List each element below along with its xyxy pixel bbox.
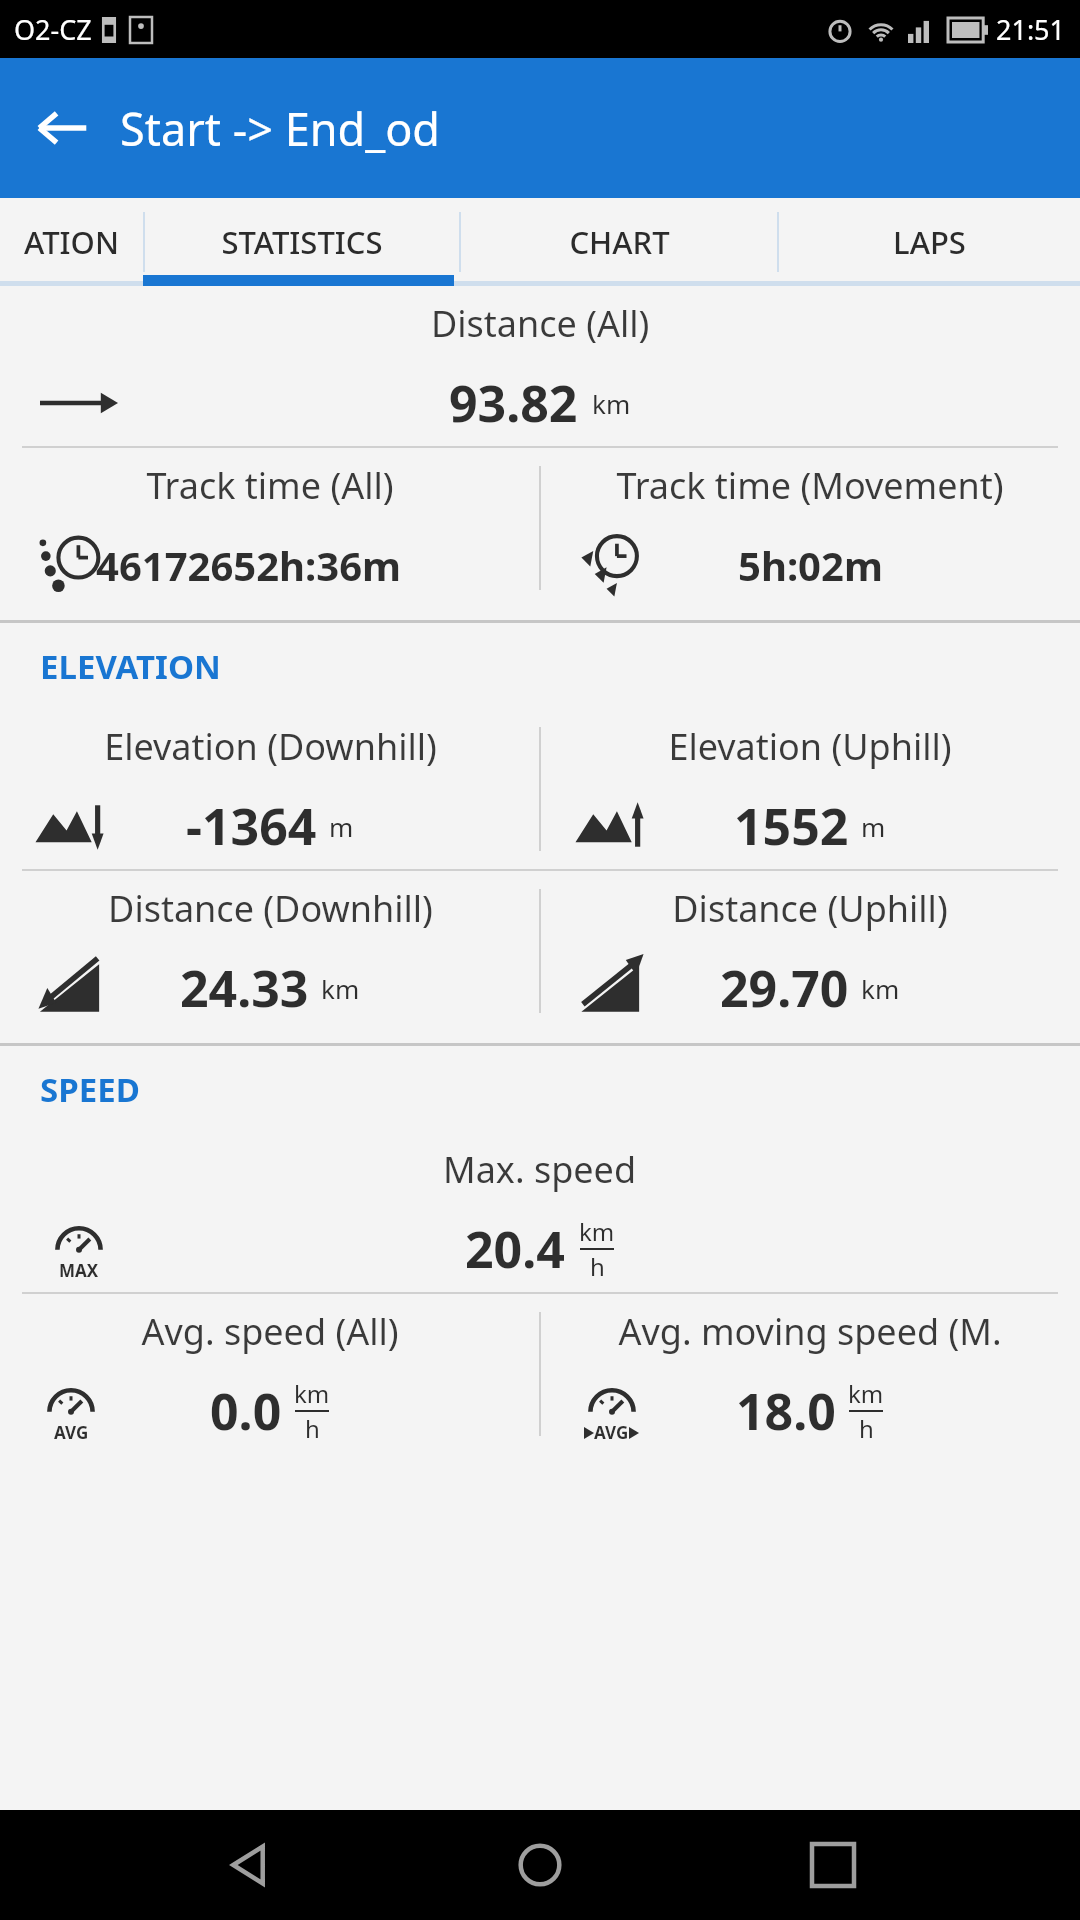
staticText: 24.33 [180,954,309,1022]
button[interactable]: Distance (All) [0,286,1080,446]
staticText: 0.0 [210,1377,282,1445]
staticText: SPEED [40,1067,140,1112]
staticText: Track time (Movement) [616,461,1004,510]
staticText: m [329,809,354,844]
other: Track time movement [574,528,648,602]
staticText: Distance (Downhill) [108,884,433,933]
staticText: ATION [24,221,119,263]
button[interactable]: Distance (Uphill) [540,871,1080,1031]
other: Average moving speed [574,1374,648,1448]
button[interactable]: Max. speed [0,1132,1080,1292]
button[interactable]: LAPS [779,198,1080,286]
staticText: ELEVATION [40,644,221,689]
button[interactable]: Track time (Movement) [540,448,1080,608]
other: Distance downhill [34,951,108,1025]
other: Track time all [34,528,108,602]
staticText: Distance (Uphill) [672,884,948,933]
staticText: CHART [569,221,670,263]
staticText: km [848,1377,884,1410]
button[interactable]: Elevation (Downhill) [0,709,540,869]
staticText: h [590,1250,605,1283]
staticText: AVG [54,1421,89,1444]
button[interactable]: Track time (All) [0,448,540,608]
staticText: -1364 [186,792,317,860]
button[interactable]: STATISTICS [145,198,459,286]
staticText: h [859,1412,874,1445]
button[interactable]: CHART [461,198,777,286]
other: Average speed all [34,1374,108,1448]
staticText: Track time (All) [146,461,394,510]
staticText: Distance (All) [431,299,650,348]
staticText: Avg. moving speed (M. [618,1307,1002,1356]
staticText: AVG [594,1421,629,1444]
staticText: MAX [59,1259,99,1282]
staticText: km [592,386,631,421]
staticText: 93.82 [449,369,578,437]
staticText: km [579,1215,615,1248]
button[interactable]: Avg. speed (All) [0,1294,540,1454]
button[interactable]: Elevation (Uphill) [540,709,1080,869]
other: Elevation uphill [574,789,648,863]
staticText: Elevation (Uphill) [668,722,952,771]
staticText: km [294,1377,330,1410]
button[interactable]: Distance (Downhill) [0,871,540,1031]
staticText: 20.4 [465,1215,565,1283]
button[interactable]: Back [203,1820,293,1910]
button[interactable]: Avg. moving speed (M. [540,1294,1080,1454]
staticText: Elevation (Downhill) [104,722,437,771]
button[interactable]: ATION [0,198,143,286]
staticText: km [321,971,360,1006]
staticText: 5h:02m [738,538,883,592]
staticText: 1552 [734,792,849,860]
other: Elevation downhill [34,789,108,863]
staticText: 21:51 [996,11,1066,48]
other: Max speed [40,1210,118,1288]
other: Distance [40,364,118,442]
staticText: m [861,809,886,844]
staticText: 46172652h:36m [96,538,402,592]
staticText: h [305,1412,320,1445]
staticText: STATISTICS [221,221,383,263]
staticText: 18.0 [736,1377,836,1445]
staticText: O2-CZ [14,11,92,48]
button[interactable]: Back [26,92,98,164]
staticText: Start -> End_od [120,98,441,159]
button[interactable]: Recents [788,1820,878,1910]
staticText: LAPS [893,221,966,263]
button[interactable]: Home [495,1820,585,1910]
staticText: 29.70 [720,954,849,1022]
staticText: km [861,971,900,1006]
other: Distance uphill [574,951,648,1025]
staticText: Max. speed [443,1145,637,1194]
staticText: Avg. speed (All) [141,1307,399,1356]
